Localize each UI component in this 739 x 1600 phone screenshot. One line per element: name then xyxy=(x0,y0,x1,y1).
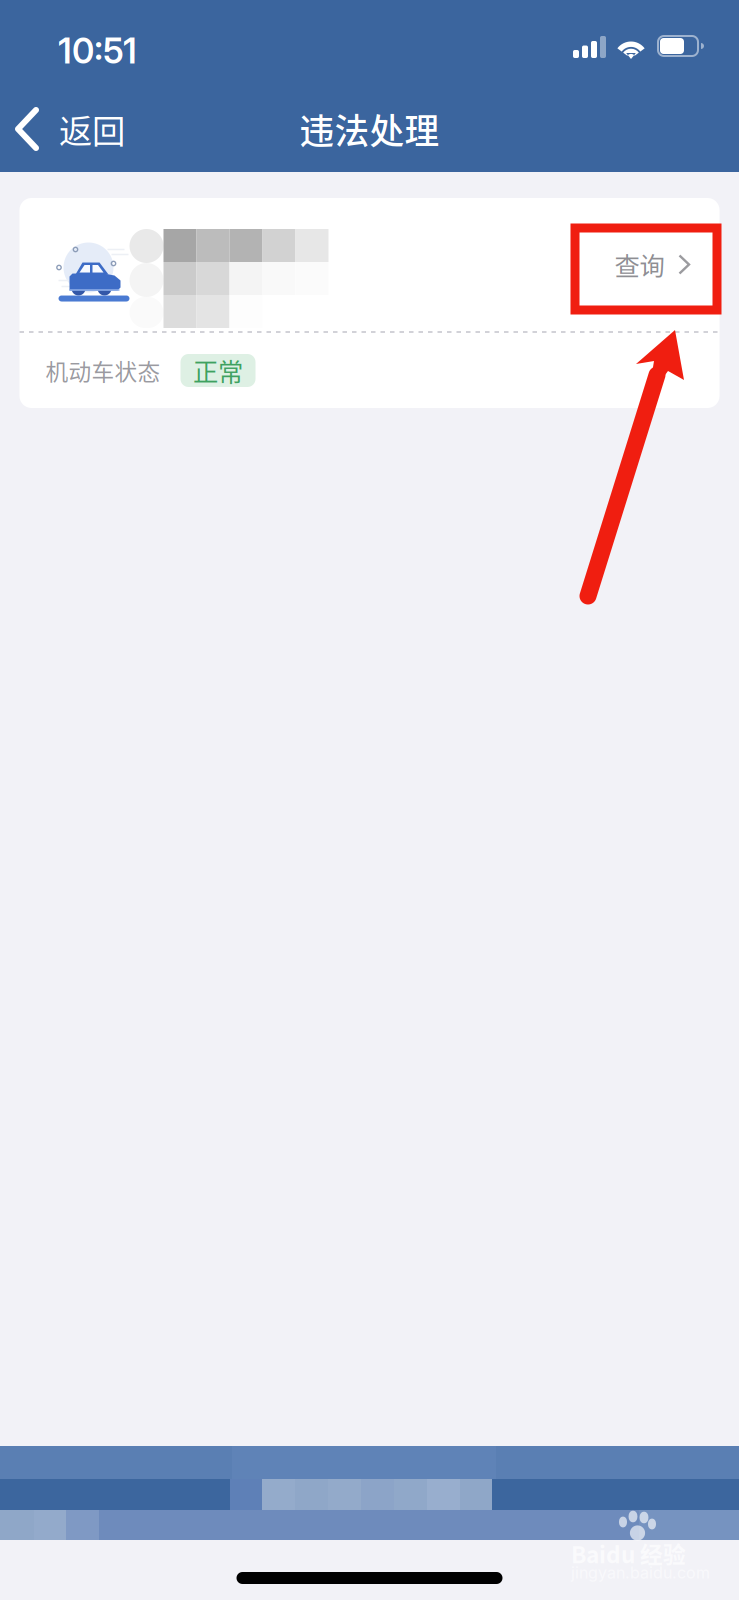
button[interactable]: 返回 xyxy=(4,86,135,172)
staticText: 10:51 xyxy=(58,30,137,72)
staticText: Baidu 经验 xyxy=(571,1537,686,1570)
staticText: 返回 xyxy=(59,105,125,153)
staticText: 机动车状态 xyxy=(45,354,160,387)
staticText: 正常 xyxy=(193,352,243,389)
button[interactable]: 查询 xyxy=(586,198,719,330)
staticText: 查询 xyxy=(614,246,664,283)
staticText: 违法处理 xyxy=(299,104,439,154)
